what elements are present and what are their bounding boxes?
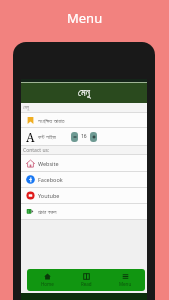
button[interactable]: Facebook (21, 172, 147, 187)
staticText: ফন্ট সাইজ (38, 133, 56, 140)
button[interactable]: Read (67, 269, 106, 291)
staticText: A (26, 129, 35, 145)
staticText: 16 (81, 133, 87, 140)
button[interactable]: Website (21, 155, 147, 171)
button[interactable]: সংরক্ষিত আয়াত (21, 113, 147, 127)
button[interactable]: Home (27, 269, 67, 291)
staticText: সংরক্ষিত আয়াত (38, 117, 65, 124)
staticText: প্রচার করুন (38, 208, 57, 215)
button[interactable]: Menu (106, 269, 145, 291)
button[interactable]: Increase font size (90, 132, 97, 142)
staticText: Contact us: (23, 147, 50, 154)
staticText: Youtube (38, 192, 60, 199)
button[interactable]: Youtube (21, 188, 147, 203)
staticText: মেনু (78, 88, 90, 98)
staticText: Menu (67, 9, 103, 27)
staticText: Website (38, 160, 59, 167)
button[interactable]: Decrease font size (71, 132, 78, 142)
button[interactable]: প্রচার করুন (21, 204, 147, 219)
staticText: Facebook (38, 176, 63, 183)
staticText: Menu (119, 281, 132, 287)
staticText: Read (81, 281, 92, 287)
staticText: Home (41, 281, 54, 287)
button[interactable]: A (21, 128, 147, 145)
staticText: মেনু (23, 105, 29, 110)
